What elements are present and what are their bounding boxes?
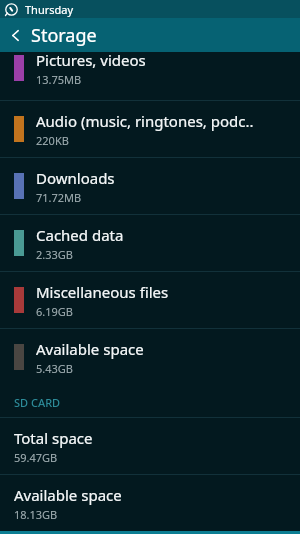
staticText: Miscellaneous files: [36, 282, 169, 302]
staticText: 13.75MB: [36, 72, 82, 87]
staticText: Downloads: [36, 168, 115, 188]
staticText: Pictures, videos: [36, 52, 146, 70]
button[interactable]: Audio (music, ringtones, podc..: [0, 101, 300, 157]
button[interactable]: Miscellaneous files: [0, 272, 300, 328]
staticText: Storage: [31, 23, 97, 48]
staticText: SD CARD: [14, 395, 61, 410]
staticText: Cached data: [36, 225, 124, 245]
staticText: 220KB: [36, 133, 69, 148]
button[interactable]: Downloads: [0, 158, 300, 214]
staticText: 71.72MB: [36, 190, 82, 205]
staticText: Available space: [36, 339, 144, 359]
staticText: 59.47GB: [14, 450, 58, 465]
staticText: 18.13GB: [14, 507, 58, 522]
staticText: Available space: [14, 485, 122, 505]
staticText: Total space: [14, 428, 93, 448]
button[interactable]: Total space: [0, 418, 300, 474]
staticText: 5.43GB: [36, 361, 73, 376]
staticText: Thursday: [25, 2, 74, 17]
button[interactable]: Available space: [0, 475, 300, 531]
button[interactable]: Back: [0, 20, 30, 50]
button[interactable]: Cached data: [0, 215, 300, 271]
staticText: 6.19GB: [36, 304, 73, 319]
button[interactable]: Pictures, videos: [0, 52, 300, 100]
staticText: Audio (music, ringtones, podc..: [36, 111, 254, 131]
staticText: 2.33GB: [36, 247, 73, 262]
button[interactable]: Available space: [0, 329, 300, 385]
